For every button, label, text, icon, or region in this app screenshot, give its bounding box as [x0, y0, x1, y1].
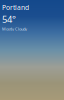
- staticText: 54°: [2, 13, 16, 25]
- staticText: Portland: [2, 3, 29, 12]
- staticText: Mostly Cloudy: [2, 26, 27, 31]
